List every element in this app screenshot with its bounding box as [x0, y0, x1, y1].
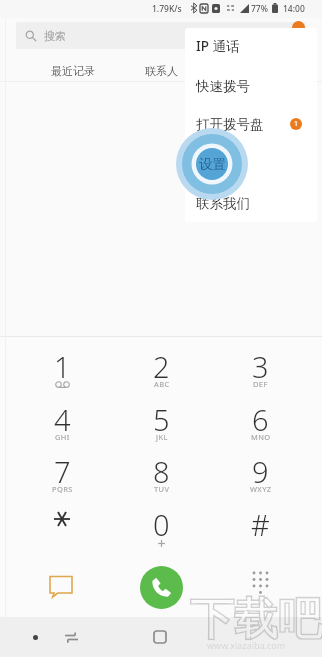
button[interactable]: 1: [12, 341, 112, 394]
staticText: 1: [294, 119, 299, 129]
staticText: 1: [54, 347, 71, 386]
staticText: 联系我们: [196, 195, 250, 212]
button[interactable]: Recents: [29, 631, 41, 643]
staticText: 3: [252, 347, 269, 386]
button[interactable]: Home: [153, 630, 167, 644]
button[interactable]: 3: [211, 341, 310, 394]
staticText: 快速拨号: [196, 78, 250, 95]
staticText: 下载吧: [190, 592, 322, 647]
staticText: 6: [252, 400, 269, 439]
staticText: #: [251, 505, 270, 544]
button[interactable]: 9: [211, 446, 310, 499]
button[interactable]: Dialpad: [249, 568, 273, 596]
staticText: MNO: [251, 432, 271, 442]
button[interactable]: 6: [211, 394, 310, 447]
button[interactable]: 7: [12, 446, 112, 499]
staticText: IP 通话: [196, 37, 240, 55]
staticText: 14:00: [283, 3, 305, 15]
staticText: 联系人: [145, 64, 178, 78]
button[interactable]: 搜索: [16, 22, 306, 49]
button[interactable]: IP 通话: [185, 32, 317, 60]
button[interactable]: 8: [112, 446, 211, 499]
button[interactable]: 快速拨号: [185, 72, 317, 100]
staticText: 5: [153, 400, 170, 439]
button[interactable]: [12, 499, 112, 552]
button[interactable]: Message: [49, 575, 74, 600]
button[interactable]: 5: [112, 394, 211, 447]
staticText: JKL: [156, 432, 168, 442]
button[interactable]: #: [211, 499, 310, 552]
staticText: 77%: [251, 3, 268, 15]
staticText: 1.79K/s: [152, 3, 182, 15]
staticText: 最近记录: [51, 64, 95, 78]
staticText: www.xiazaiba.com: [207, 639, 286, 651]
staticText: WXYZ: [250, 484, 272, 494]
staticText: GHI: [55, 432, 70, 442]
staticText: ABC: [154, 379, 170, 389]
staticText: DEF: [253, 379, 268, 389]
staticText: 2: [153, 347, 170, 386]
staticText: 8: [153, 452, 170, 491]
button[interactable]: 联系人: [118, 59, 204, 82]
button[interactable]: 打开拨号盘: [185, 110, 317, 138]
staticText: 7: [54, 452, 71, 491]
staticText: 打开拨号盘: [196, 116, 264, 133]
button[interactable]: 联系我们: [185, 189, 317, 217]
button[interactable]: 最近记录: [28, 59, 118, 82]
staticText: 9: [252, 452, 269, 491]
staticText: 4: [54, 400, 71, 439]
staticText: 设置: [199, 156, 226, 173]
button[interactable]: 0: [112, 499, 211, 552]
button[interactable]: Call: [140, 566, 183, 609]
staticText: PQRS: [52, 484, 73, 494]
button[interactable]: 2: [112, 341, 211, 394]
staticText: 0: [153, 505, 170, 544]
staticText: 搜索: [44, 29, 66, 43]
button[interactable]: Back: [64, 630, 78, 644]
button[interactable]: 设置: [174, 126, 250, 202]
button[interactable]: 4: [12, 394, 112, 447]
staticText: TUV: [154, 484, 170, 494]
